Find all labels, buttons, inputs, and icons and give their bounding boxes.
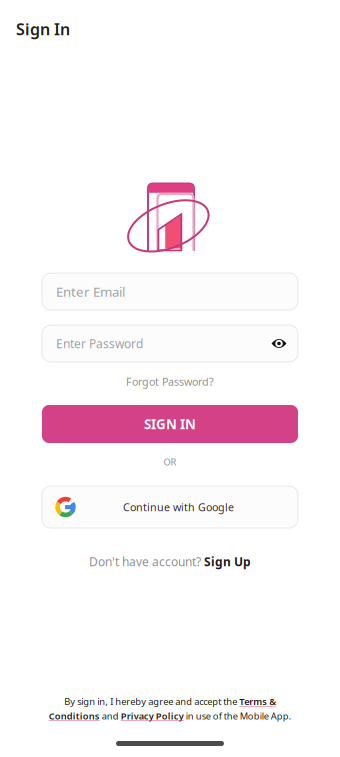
staticText: Forgot Password? [126,374,214,389]
staticText: By sign in, I hereby agree and accept th… [64,695,276,708]
staticText: Conditions and Privacy Policy in use of … [48,710,291,722]
staticText: Don't have account? [89,553,201,569]
staticText: Enter Email [56,283,125,300]
button[interactable]: Continue with Google [42,486,298,528]
button[interactable]: Forgot Password? [0,377,340,386]
staticText: Enter Password [56,335,143,351]
button[interactable]: Sign Up [204,553,251,569]
staticText: Continue with Google [123,500,234,514]
staticText: OR [163,456,176,468]
staticText: SIGN IN [144,415,196,433]
staticText: Sign In [16,18,70,40]
button[interactable]: SIGN IN [42,405,298,443]
staticText: Sign Up [204,553,251,569]
